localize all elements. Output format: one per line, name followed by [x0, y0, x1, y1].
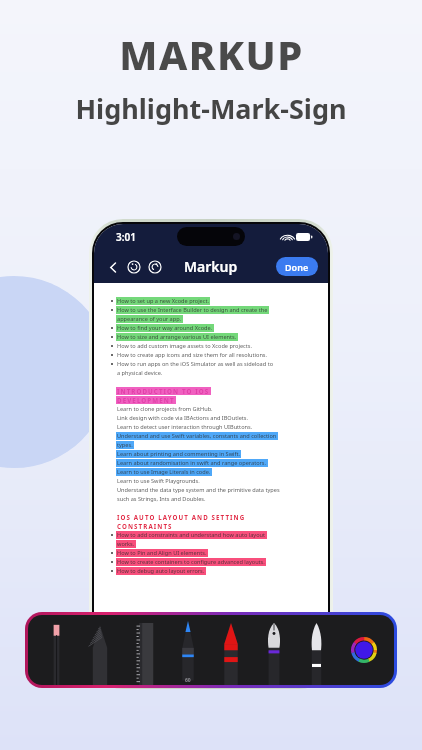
staticText: INTRODUCTION TO IOS: [117, 387, 210, 395]
staticText: How to run apps on the iOS Simulator as …: [117, 360, 274, 368]
staticText: Markup: [184, 257, 238, 276]
button[interactable]: Back: [105, 259, 121, 275]
staticText: Learn to detect user interaction through…: [117, 423, 253, 431]
staticText: CONSTRAINTS: [117, 522, 173, 530]
staticText: Learn to use Swift Playgrounds.: [117, 477, 200, 485]
staticText: Learn to clone projects from GitHub.: [117, 405, 213, 413]
staticText: How to add custom image assets to Xcode …: [117, 342, 252, 350]
staticText: How to size and arrange various UI eleme…: [117, 333, 237, 341]
button[interactable]: Redo: [147, 259, 163, 275]
staticText: Learn about printing and commenting in S…: [117, 450, 240, 458]
staticText: Learn to use Image Literals in code.: [117, 468, 211, 476]
staticText: DEVELOPMENT: [117, 396, 175, 404]
staticText: Learn about randomisation in swift and r…: [117, 459, 267, 467]
staticText: Understand the data type system and the …: [117, 486, 280, 494]
staticText: Done: [285, 261, 309, 273]
staticText: How to use the Interface Builder to desi…: [117, 306, 268, 314]
button[interactable]: Drawing tool: [122, 615, 166, 685]
staticText: Understand and use Swift variables, cons…: [117, 432, 277, 440]
staticText: 3:01: [116, 230, 136, 244]
staticText: How to set up a new Xcode project.: [117, 297, 209, 305]
button[interactable]: Undo: [126, 259, 142, 275]
button[interactable]: How to set up a new Xcode project.: [94, 283, 328, 662]
staticText: How to create app icons and size them fo…: [117, 351, 268, 359]
staticText: MARKUP: [119, 27, 304, 81]
staticText: Highlight-Mark-Sign: [75, 90, 347, 127]
button[interactable]: Drawing tool: [295, 615, 338, 685]
staticText: How to Pin and Align UI elements.: [117, 549, 207, 557]
staticText: How to debug auto layout errors.: [117, 567, 205, 575]
staticText: a physical device.: [117, 369, 163, 377]
staticText: such as Strings, Ints and Doubles.: [117, 495, 206, 503]
staticText: types.: [117, 441, 133, 449]
button[interactable]: Drawing tool: [252, 615, 295, 685]
staticText: Link design with code via IBActions and …: [117, 414, 249, 422]
button[interactable]: Drawing tool: [166, 615, 209, 685]
button[interactable]: Drawing tool: [78, 615, 122, 685]
button[interactable]: Drawing tool: [34, 615, 78, 685]
staticText: works.: [117, 540, 135, 548]
staticText: How to create containers to configure ad…: [117, 558, 265, 566]
staticText: appearance of your app.: [117, 315, 182, 323]
staticText: How to find your way around Xcode.: [117, 324, 213, 332]
button[interactable]: Color picker: [338, 615, 390, 685]
staticText: IOS AUTO LAYOUT AND SETTING: [117, 513, 246, 521]
button[interactable]: Drawing tool: [209, 615, 252, 685]
staticText: 60: [185, 677, 191, 684]
staticText: How to add constraints and understand ho…: [117, 531, 266, 539]
button[interactable]: Done: [276, 257, 318, 276]
